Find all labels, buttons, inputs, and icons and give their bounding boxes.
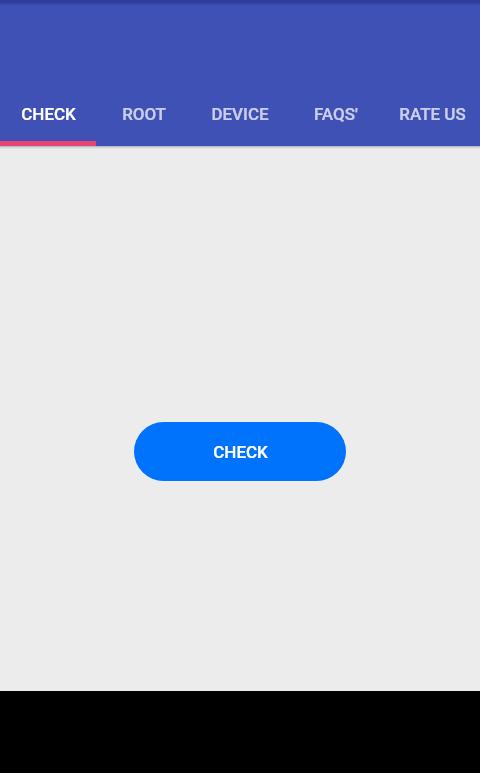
staticText: DEVICE: [211, 104, 269, 124]
button[interactable]: CHECK: [134, 422, 346, 481]
button[interactable]: ROOT: [96, 98, 192, 146]
staticText: CHECK: [213, 442, 268, 462]
button[interactable]: DEVICE: [192, 98, 288, 146]
button[interactable]: FAQS': [288, 98, 384, 146]
staticText: ROOT: [122, 104, 166, 124]
staticText: RATE US: [399, 104, 466, 124]
staticText: CHECK: [21, 104, 76, 124]
button[interactable]: CHECK: [0, 98, 96, 146]
button[interactable]: RATE US: [384, 98, 480, 146]
staticText: FAQS': [314, 104, 358, 124]
